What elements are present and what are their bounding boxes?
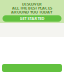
button[interactable] <box>2 64 62 72</box>
staticText: DISCOVER <box>22 1 42 7</box>
staticText: GET STARTED <box>19 16 44 21</box>
staticText: ALL THE BEST PLACES <box>12 5 52 11</box>
staticText: AROUND YOU TODAY <box>11 9 53 15</box>
button[interactable]: GET STARTED <box>2 15 61 22</box>
